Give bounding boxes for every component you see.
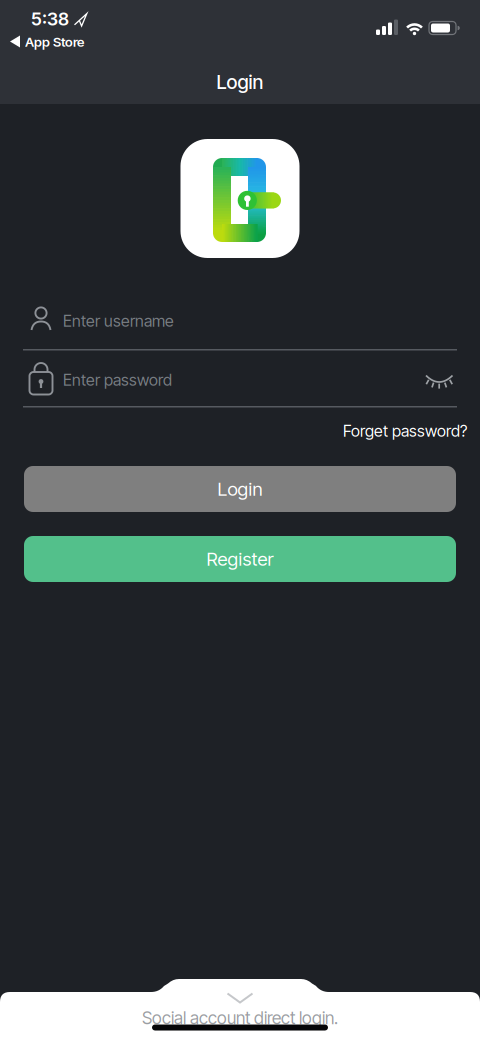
staticText: Login — [217, 478, 262, 500]
staticText: Enter username — [63, 311, 174, 331]
staticText: Social account direct login. — [142, 1007, 338, 1028]
button[interactable]: Login — [24, 466, 456, 512]
staticText: Enter password — [63, 370, 172, 390]
button[interactable]: Collapse — [0, 0, 480, 1039]
button[interactable]: Register — [24, 536, 456, 582]
button[interactable]: Forget password? — [343, 421, 467, 441]
staticText: Register — [206, 548, 273, 570]
staticText: 5:38 — [31, 8, 69, 30]
staticText: Forget password? — [343, 421, 467, 441]
staticText: Login — [216, 70, 263, 94]
staticText: App Store — [25, 34, 84, 50]
button[interactable]: Show password — [0, 0, 480, 1039]
button[interactable]: Back to App Store — [0, 0, 480, 1039]
